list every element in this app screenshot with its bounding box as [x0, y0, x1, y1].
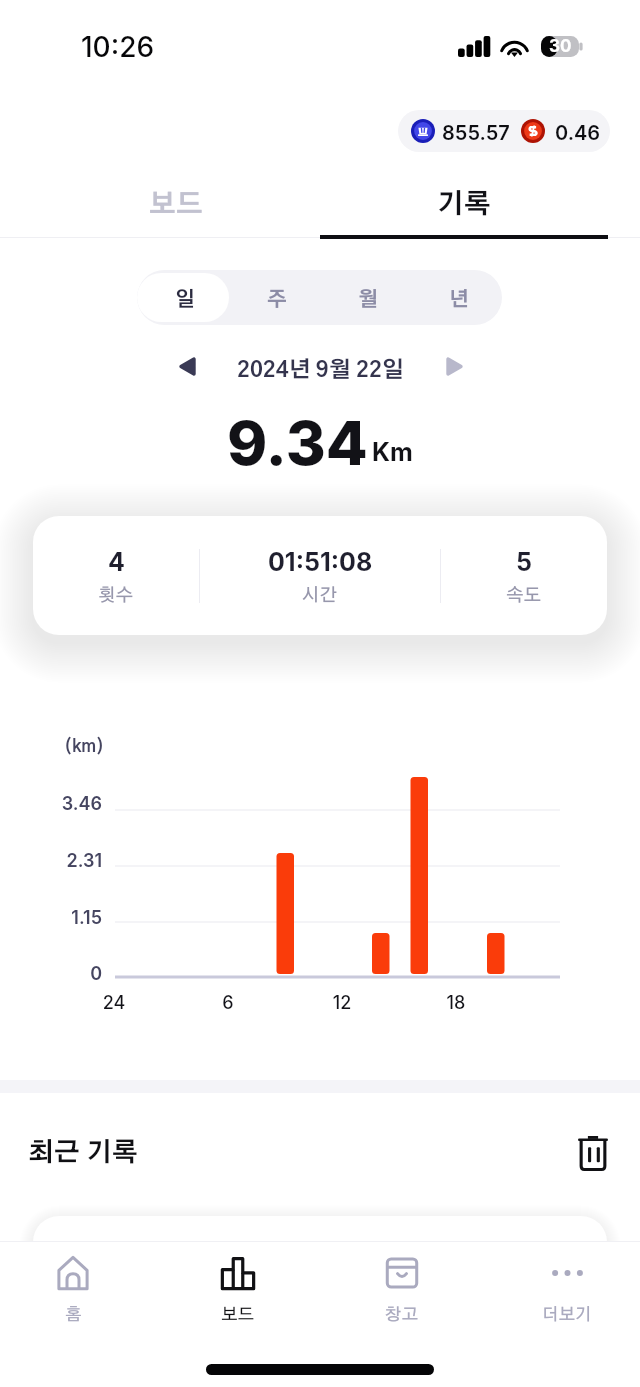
staticText: 년	[449, 290, 469, 310]
button[interactable]: 기록	[320, 160, 608, 238]
staticText: 횟수	[98, 587, 134, 605]
staticText: 2.31	[0, 850, 102, 872]
staticText: 2024년 9월 22일	[237, 359, 404, 381]
staticText: 6	[198, 992, 258, 1014]
button[interactable]: Next day	[433, 345, 475, 387]
button[interactable]: 더보기	[505, 1242, 629, 1340]
staticText: (km)	[64, 738, 105, 755]
staticText: 12	[312, 992, 372, 1014]
staticText: 보드	[221, 1306, 255, 1323]
button[interactable]	[33, 1216, 607, 1276]
staticText: 속도	[506, 587, 542, 605]
button[interactable]: 년	[411, 273, 502, 322]
staticText: 0	[0, 963, 102, 985]
button[interactable]: 창고	[340, 1242, 464, 1340]
button[interactable]: 홈	[11, 1242, 135, 1340]
button[interactable]: 일	[137, 273, 229, 322]
staticText: 24	[84, 992, 144, 1014]
staticText: 보드	[149, 191, 203, 218]
button[interactable]: 보드	[176, 1242, 300, 1340]
staticText: 3.46	[0, 793, 102, 815]
staticText: Km	[372, 437, 413, 467]
staticText: 30	[549, 36, 572, 57]
button[interactable]: Delete records	[572, 1132, 614, 1174]
button[interactable]: 5	[441, 516, 607, 635]
staticText: 주	[267, 290, 287, 310]
staticText: 5	[516, 547, 532, 577]
staticText: 홈	[65, 1306, 82, 1323]
staticText: 18	[426, 992, 486, 1014]
staticText: 월	[358, 290, 378, 310]
staticText: 4	[108, 547, 125, 577]
button[interactable]: 01:51:08	[200, 516, 440, 635]
staticText: 10:26	[81, 30, 155, 64]
button[interactable]: 4	[33, 516, 199, 635]
staticText: 9.34	[227, 406, 368, 480]
staticText: 855.57	[442, 121, 510, 145]
staticText: 창고	[385, 1306, 419, 1323]
button[interactable]: 월	[320, 273, 411, 322]
staticText: 시간	[302, 587, 338, 605]
button[interactable]: Previous day	[166, 345, 208, 387]
staticText: 최근 기록	[28, 1140, 138, 1166]
button[interactable]: 보드	[32, 160, 320, 238]
staticText: 1.15	[0, 907, 102, 929]
button[interactable]: 주	[229, 273, 320, 322]
staticText: 0.46	[555, 121, 601, 145]
button[interactable]: 855.57	[398, 110, 610, 152]
staticText: 일	[175, 290, 195, 310]
staticText: 01:51:08	[268, 547, 373, 577]
staticText: 기록	[437, 191, 491, 218]
staticText: 더보기	[542, 1306, 592, 1323]
